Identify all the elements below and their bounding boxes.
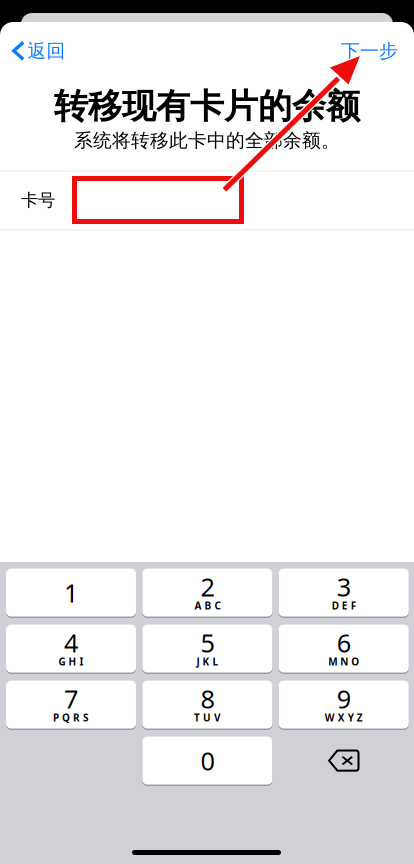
staticText: 返回 <box>27 39 65 63</box>
staticText: 转移现有卡片的余额 <box>54 85 360 128</box>
staticText: M N O <box>328 655 359 668</box>
staticText: A B C <box>194 599 220 612</box>
button[interactable]: 4 <box>6 625 136 673</box>
staticText: P Q R S <box>53 711 89 724</box>
staticText: W X Y Z <box>325 711 363 724</box>
staticText: 下一步 <box>341 39 398 63</box>
staticText: 9 <box>337 681 351 716</box>
staticText: T U V <box>194 711 221 724</box>
button[interactable]: 1 <box>6 569 136 617</box>
staticText: 5 <box>200 625 214 660</box>
button[interactable]: 下一步 <box>341 28 414 74</box>
staticText: 8 <box>200 681 214 716</box>
staticText: 0 <box>200 743 214 778</box>
button[interactable]: 删除 <box>279 737 409 785</box>
button[interactable]: 5 <box>142 625 272 673</box>
staticText: 卡号 <box>21 189 55 211</box>
button[interactable]: 7 <box>6 681 136 729</box>
button[interactable]: 2 <box>142 569 272 617</box>
staticText: 系统将转移此卡中的全部余额。 <box>74 129 340 152</box>
staticText: 2 <box>200 569 214 604</box>
button[interactable]: 0 <box>142 737 272 785</box>
button[interactable]: 8 <box>142 681 272 729</box>
button[interactable]: 6 <box>279 625 409 673</box>
staticText: G H I <box>58 655 83 668</box>
staticText: 6 <box>337 625 351 660</box>
staticText: D E F <box>332 599 356 612</box>
button[interactable]: 返回 <box>0 28 65 74</box>
staticText: 7 <box>64 681 78 716</box>
staticText: 1 <box>64 575 78 610</box>
button[interactable]: 卡号 <box>0 171 414 229</box>
button[interactable]: 3 <box>279 569 409 617</box>
staticText: 4 <box>64 625 78 660</box>
staticText: 3 <box>337 569 351 604</box>
button[interactable]: 9 <box>279 681 409 729</box>
staticText: J K L <box>196 655 218 668</box>
